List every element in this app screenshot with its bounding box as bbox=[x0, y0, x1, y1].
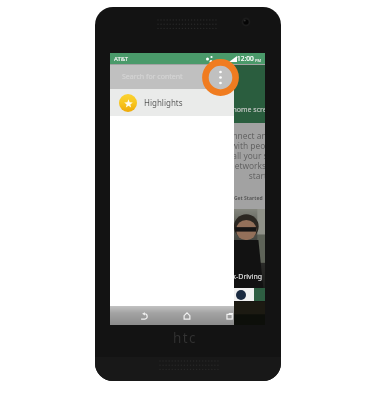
staticText: Highlights bbox=[144, 97, 183, 108]
staticText: AT&T bbox=[114, 55, 128, 63]
button[interactable]: Back bbox=[134, 306, 154, 325]
button[interactable]: Search for content bbox=[110, 65, 234, 89]
button[interactable]: Recent apps bbox=[220, 306, 234, 325]
staticText: Share your home screen bbox=[174, 105, 265, 115]
staticText: PM bbox=[255, 58, 262, 63]
button[interactable]: More options bbox=[202, 59, 239, 96]
button[interactable]: Get Started bbox=[234, 195, 263, 202]
staticText: htc bbox=[173, 329, 197, 347]
staticText: nk-Driving bbox=[228, 272, 263, 282]
button[interactable]: Home bbox=[177, 306, 197, 325]
button[interactable]: Highlights bbox=[110, 89, 234, 116]
staticText: Connect and share with people in all you… bbox=[194, 130, 265, 181]
staticText: 12:00 bbox=[237, 54, 254, 63]
staticText: Search for content bbox=[122, 72, 183, 82]
